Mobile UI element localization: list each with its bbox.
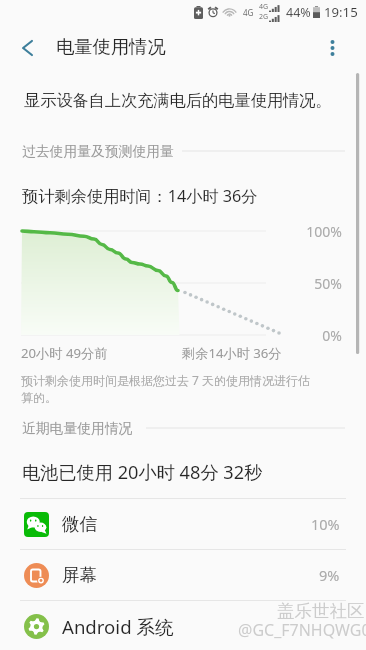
staticText: 4G — [259, 2, 269, 12]
staticText: 4G — [243, 7, 254, 18]
staticText: 微信 — [62, 513, 98, 535]
button[interactable]: 微信 — [0, 499, 366, 549]
staticText: Android 系统 — [62, 614, 174, 639]
button[interactable]: 屏幕 — [0, 550, 366, 600]
staticText: 100% — [300, 222, 342, 241]
staticText: 电量使用情况 — [56, 35, 166, 58]
staticText: 屏幕 — [62, 564, 98, 586]
button[interactable]: Android 系统 — [0, 601, 366, 650]
staticText: 19:15 — [324, 3, 358, 21]
staticText: 预计剩余使用时间是根据您过去 7 天的使用情况进行估算的。 — [21, 372, 317, 406]
staticText: 电池已使用 20小时 48分 32秒 — [22, 460, 263, 485]
staticText: 10% — [311, 514, 340, 534]
staticText: 近期电量使用情况 — [22, 420, 133, 436]
staticText: 过去使用量及预测使用量 — [22, 143, 174, 159]
staticText: @GC_F7NHQWG0 — [238, 619, 366, 641]
button[interactable]: Back — [0, 24, 54, 72]
staticText: 44% — [286, 4, 311, 21]
button[interactable]: More options — [308, 24, 356, 72]
staticText: 50% — [300, 274, 342, 293]
staticText: 剩余14小时 36分 — [182, 344, 282, 362]
staticText: 盖乐世社区 — [277, 600, 365, 622]
staticText: 0% — [300, 326, 342, 345]
staticText: 9% — [319, 565, 340, 585]
staticText: 20小时 49分前 — [21, 344, 108, 362]
staticText: 显示设备自上次充满电后的电量使用情况。 — [24, 90, 332, 110]
staticText: 2G — [259, 12, 269, 22]
staticText: 预计剩余使用时间：14小时 36分 — [22, 185, 258, 207]
